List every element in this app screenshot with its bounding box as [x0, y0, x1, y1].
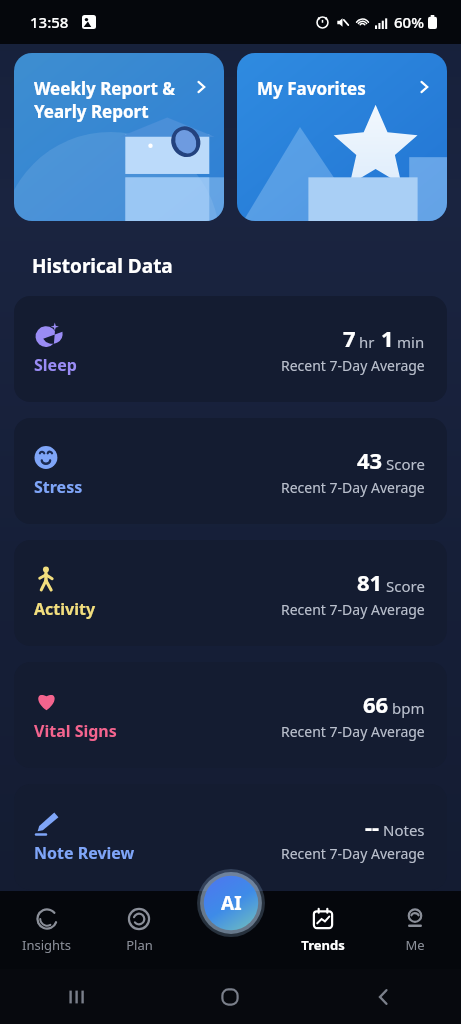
button[interactable]: Insights — [0, 891, 93, 969]
staticText: Me — [405, 936, 425, 954]
staticText: Recent 7-Day Average — [281, 356, 425, 375]
staticText: Trends — [301, 936, 345, 954]
button[interactable]: Activity — [14, 540, 447, 646]
staticText: -- — [365, 811, 380, 841]
button[interactable]: Back — [307, 969, 461, 1024]
staticText: Score — [386, 576, 425, 596]
staticText: Notes — [383, 820, 425, 840]
staticText: min — [397, 332, 425, 352]
staticText: Insights — [22, 936, 71, 954]
staticText: 7 — [343, 323, 356, 353]
staticText: 60% — [394, 12, 424, 32]
staticText: Recent 7-Day Average — [281, 600, 425, 619]
staticText: 81 — [357, 567, 383, 597]
staticText: bpm — [392, 698, 425, 718]
staticText: Recent 7-Day Average — [281, 722, 425, 741]
button[interactable]: Me — [369, 891, 461, 969]
staticText: hr — [359, 332, 375, 352]
staticText: 13:58 — [30, 12, 69, 32]
button[interactable]: Stress — [14, 418, 447, 524]
staticText: Weekly Report & Yearly Report — [34, 77, 192, 123]
button[interactable]: Sleep — [14, 296, 447, 402]
button[interactable]: Weekly Report & Yearly Report — [14, 53, 224, 221]
staticText: Sleep — [34, 354, 77, 376]
staticText: Score — [386, 454, 425, 474]
button[interactable]: Note Review — [14, 784, 447, 890]
button[interactable]: Plan — [93, 891, 185, 969]
button[interactable]: Recents — [0, 969, 153, 1024]
staticText: Recent 7-Day Average — [281, 844, 425, 863]
staticText: 1 — [381, 323, 394, 353]
staticText: Historical Data — [32, 253, 173, 279]
staticText: AI — [221, 890, 242, 916]
button[interactable]: My Favorites — [237, 53, 447, 221]
staticText: Plan — [126, 936, 153, 954]
staticText: 43 — [357, 445, 383, 475]
button[interactable]: AI assistant — [197, 869, 265, 937]
button[interactable]: Trends — [277, 891, 369, 969]
staticText: Note Review — [34, 842, 135, 864]
staticText: 66 — [363, 689, 389, 719]
staticText: Activity — [34, 598, 96, 620]
staticText: Recent 7-Day Average — [281, 478, 425, 497]
staticText: My Favorites — [257, 77, 415, 100]
staticText: Stress — [34, 476, 83, 498]
button[interactable]: Home — [153, 969, 307, 1024]
staticText: Vital Signs — [34, 720, 117, 742]
button[interactable]: Vital Signs — [14, 662, 447, 768]
